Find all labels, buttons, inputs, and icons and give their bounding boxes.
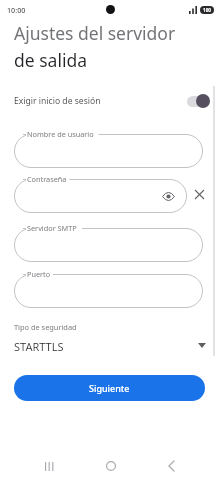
staticText: Exigir inicio de sesión [14,95,101,107]
button[interactable]: Atrás [161,456,181,476]
staticText: STARTTLS [14,339,64,354]
button[interactable]: Inicio [101,456,121,476]
staticText: 10:00 [7,5,26,15]
staticText: Siguiente [89,382,130,394]
staticText: de salida [14,48,87,72]
button[interactable]: Tipo de seguridad [0,318,221,360]
button[interactable]: Borrar [190,185,208,203]
staticText: Servidor SMTP [27,223,77,233]
other: Exigir inicio de sesión [185,93,210,109]
button[interactable]: Nombre de usuario [14,128,203,168]
button[interactable]: Siguiente [14,375,205,401]
staticText: Contraseña [27,174,67,184]
button[interactable]: Mostrar contraseña [159,187,177,205]
button[interactable]: Servidor SMTP [14,222,203,262]
button[interactable]: Contraseña [14,173,187,213]
button[interactable]: Puerto [14,268,203,308]
staticText: 100 [203,7,211,13]
staticText: Nombre de usuario [27,129,94,139]
button[interactable]: Recientes [39,456,59,476]
staticText: Puerto [27,269,51,279]
button[interactable]: Exigir inicio de sesión [0,88,221,114]
staticText: Ajustes del servidor [14,21,176,45]
staticText: Tipo de seguridad [14,322,77,332]
